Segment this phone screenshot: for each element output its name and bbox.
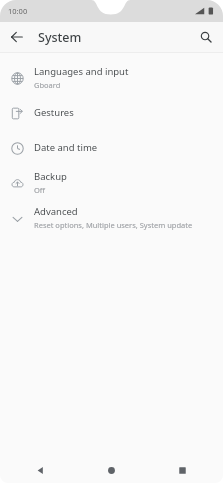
staticText: Gboard: [34, 80, 61, 90]
staticText: System: [38, 29, 82, 46]
staticText: Date and time: [34, 141, 98, 154]
staticText: Reset options, Multiple users, System up…: [34, 220, 193, 230]
staticText: Languages and input: [34, 65, 129, 78]
button[interactable]: Gestures: [0, 95, 223, 130]
button[interactable]: Home: [98, 457, 124, 483]
button[interactable]: Recent apps: [169, 457, 195, 483]
staticText: 10:00: [8, 6, 28, 16]
staticText: Backup: [34, 170, 67, 183]
button[interactable]: Date and time: [0, 130, 223, 165]
staticText: Gestures: [34, 106, 74, 119]
button[interactable]: Back: [27, 457, 53, 483]
staticText: Advanced: [34, 205, 78, 218]
staticText: Off: [34, 185, 46, 195]
button[interactable]: Languages and input: [0, 60, 223, 95]
button[interactable]: Advanced: [0, 200, 223, 235]
button[interactable]: Search: [193, 24, 219, 50]
button[interactable]: Back: [4, 24, 30, 50]
button[interactable]: Backup: [0, 165, 223, 200]
